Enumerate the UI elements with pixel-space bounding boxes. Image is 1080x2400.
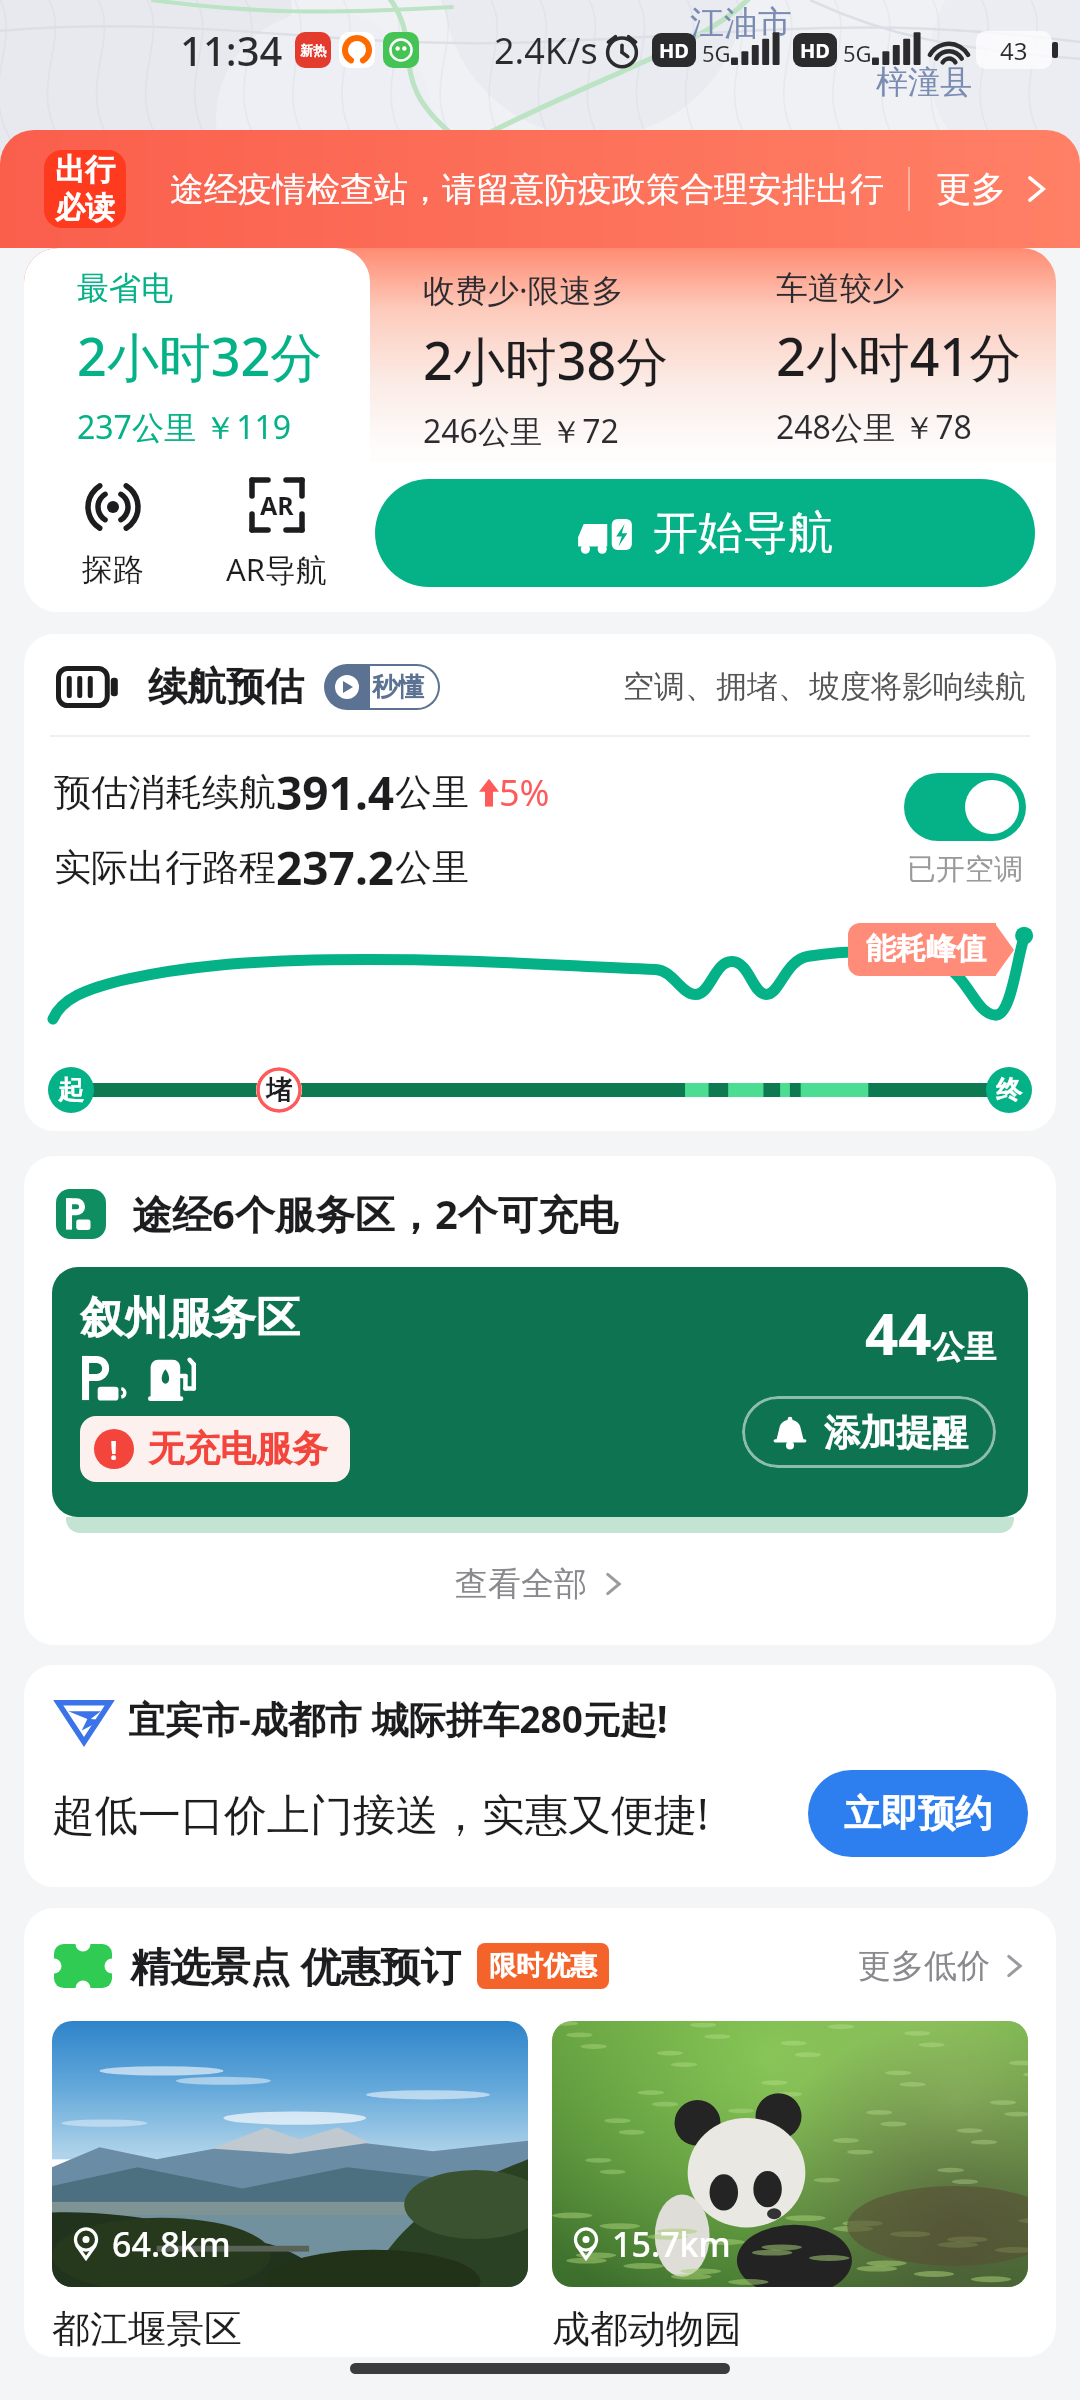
staticText: 公里 xyxy=(395,844,469,891)
staticText: 2小时41分 xyxy=(776,320,1022,391)
button[interactable]: 更多低价 xyxy=(858,1945,1026,1987)
button[interactable]: 秒懂 xyxy=(324,664,440,710)
staticText: 添加提醒 xyxy=(824,1410,968,1455)
staticText: 梓潼县 xyxy=(876,62,972,102)
staticText: HD xyxy=(659,37,689,64)
staticText: 无充电服务 xyxy=(148,1426,328,1471)
staticText: HD xyxy=(800,37,830,64)
button[interactable]: 立即预约 xyxy=(808,1770,1028,1857)
staticText: 必读 xyxy=(55,189,115,227)
button[interactable]: 查看全部 xyxy=(24,1559,1056,1609)
staticText: 预估消耗续航 xyxy=(54,769,276,816)
staticText: 2小时32分 xyxy=(77,320,323,391)
staticText: 开始导航 xyxy=(653,505,833,562)
staticText: 2.4K/s xyxy=(494,26,598,75)
staticText: 391.4 xyxy=(276,761,395,824)
staticText: 43 xyxy=(1000,34,1028,67)
staticText: 237公里 ￥119 xyxy=(77,405,292,449)
staticText: 立即预约 xyxy=(844,1790,992,1837)
button[interactable]: 64.8km xyxy=(52,2021,528,2353)
staticText: ! xyxy=(110,1432,118,1467)
button[interactable]: 开始导航 xyxy=(375,479,1035,587)
staticText: 收费少·限速多 xyxy=(423,268,624,312)
staticText: 叙州服务区 xyxy=(80,1291,300,1346)
staticText: 11:34 xyxy=(180,23,283,77)
staticText: AR导航 xyxy=(226,548,328,590)
button[interactable]: 叙州服务区 xyxy=(52,1267,1028,1517)
button[interactable]: 收费少·限速多 xyxy=(370,248,723,462)
staticText: 江油市 xyxy=(690,2,792,45)
staticText: 5% xyxy=(499,768,550,817)
staticText: 探路 xyxy=(82,550,144,589)
staticText: 更多 xyxy=(936,167,1006,211)
staticText: 44 xyxy=(865,1293,932,1372)
staticText: 237.2 xyxy=(276,836,395,899)
staticText: 新热 xyxy=(300,42,326,58)
button[interactable]: 添加提醒 xyxy=(742,1396,996,1468)
staticText: 查看全部 xyxy=(455,1563,587,1605)
staticText: 公里 xyxy=(932,1327,996,1367)
staticText: 精选景点 优惠预订 xyxy=(130,1938,461,1993)
staticText: 续航预估 xyxy=(148,662,304,711)
staticText: 5G xyxy=(702,38,731,68)
button[interactable]: 车道较少 xyxy=(723,248,1056,462)
staticText: 出行 xyxy=(55,151,115,189)
staticText: 起 xyxy=(58,1074,84,1107)
staticText: 空调、拥堵、坡度将影响续航 xyxy=(623,667,1026,706)
staticText: AR xyxy=(260,488,294,522)
staticText: 已开空调 xyxy=(907,851,1023,888)
staticText: 公里 xyxy=(395,769,469,816)
staticText: 限时优惠 xyxy=(489,1949,597,1983)
staticText: 都江堰景区 xyxy=(52,2305,242,2353)
staticText: 成都动物园 xyxy=(552,2305,742,2353)
other: 探路 xyxy=(84,478,142,536)
staticText: 最省电 xyxy=(77,268,173,308)
staticText: 248公里 ￥78 xyxy=(776,405,972,449)
button[interactable]: 出行 xyxy=(0,130,1080,248)
staticText: 15.7km xyxy=(612,2221,731,2267)
staticText: 途经6个服务区，2个可充电 xyxy=(132,1186,618,1241)
staticText: 246公里 ￥72 xyxy=(423,409,619,453)
staticText: 宜宾市-成都市 城际拼车280元起! xyxy=(128,1693,668,1744)
other: AR导航 xyxy=(248,476,306,534)
staticText: 64.8km xyxy=(112,2221,231,2267)
staticText: 车道较少 xyxy=(776,268,904,308)
button[interactable]: 15.7km xyxy=(552,2021,1028,2353)
staticText: 实际出行路程 xyxy=(54,844,276,891)
staticText: 能耗峰值 xyxy=(866,930,986,968)
staticText: 途经疫情检查站，请留意防疫政策合理安排出行 xyxy=(170,168,884,211)
staticText: 秒懂 xyxy=(372,671,424,704)
staticText: 终 xyxy=(996,1074,1022,1107)
staticText: 5G xyxy=(843,38,872,68)
button[interactable]: 空调开关 xyxy=(904,773,1026,841)
staticText: 超低一口价上门接送，实惠又便捷! xyxy=(52,1784,709,1843)
button[interactable] xyxy=(24,248,370,612)
staticText: 堵 xyxy=(266,1074,292,1107)
staticText: 更多低价 xyxy=(858,1945,990,1987)
button[interactable]: AR导航 xyxy=(201,476,353,590)
staticText: 2小时38分 xyxy=(423,324,669,395)
button[interactable]: 探路 xyxy=(57,478,169,589)
